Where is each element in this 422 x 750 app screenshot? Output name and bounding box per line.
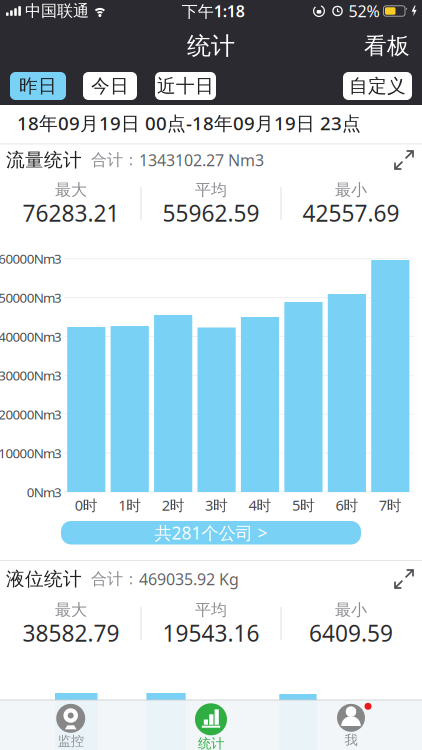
staticText: 最大 [55,600,87,620]
staticText: 共281个公司 > [154,521,267,544]
staticText: 30000Nm3 [0,366,62,384]
button[interactable]: 全屏查看 [395,149,422,171]
staticText: 50000Nm3 [0,289,62,306]
staticText: 38582.79 [22,618,119,648]
staticText: 0Nm3 [27,483,62,501]
staticText: 1时 [118,495,141,515]
staticText: 中国联通 [25,1,89,21]
staticText: 最大 [55,180,87,200]
button[interactable]: 共281个公司 > [61,521,361,544]
staticText: 2时 [162,495,185,515]
staticText: 40000Nm3 [0,328,62,345]
staticText: 统计 [187,31,235,61]
staticText: 6时 [335,495,358,515]
staticText: 4时 [248,495,271,515]
staticText: 19543.16 [162,618,259,648]
staticText: 平均 [195,600,227,620]
staticText: 10000Nm3 [0,444,62,462]
staticText: 我 [344,732,357,748]
staticText: 流量统计 [6,148,82,171]
staticText: 0时 [75,495,98,515]
staticText: 1343102.27 Nm3 [139,149,264,171]
button[interactable]: 今日 [83,72,137,100]
staticText: 下午1:18 [182,0,245,22]
staticText: 42557.69 [302,198,399,228]
button[interactable]: 看板 [364,30,422,58]
staticText: 最小 [335,600,367,620]
button[interactable]: 监控 [26,703,116,749]
staticText: 76283.21 [22,198,119,228]
staticText: 最小 [335,180,367,200]
button[interactable]: 自定义 [343,72,412,100]
staticText: 20000Nm3 [0,405,62,423]
staticText: 合计： [91,569,139,589]
button[interactable]: 近十日 [155,72,216,100]
staticText: 昨日 [19,74,57,97]
staticText: 看板 [364,32,410,60]
staticText: 统计 [198,735,224,750]
staticText: 55962.59 [162,198,259,228]
button[interactable]: 昨日 [10,72,66,100]
staticText: 469035.92 Kg [139,568,239,590]
button[interactable]: 我 [306,703,396,749]
staticText: 今日 [91,74,129,97]
staticText: 液位统计 [6,567,82,590]
staticText: 3时 [205,495,228,515]
staticText: 52% [348,0,379,22]
staticText: 近十日 [157,74,214,97]
staticText: 6409.59 [309,618,393,648]
staticText: 监控 [58,733,84,749]
staticText: 合计： [91,150,139,170]
staticText: 平均 [195,180,227,200]
staticText: 18年09月19日 00点-18年09月19日 23点 [17,111,361,135]
button[interactable]: 统计 [166,703,256,750]
staticText: 5时 [292,495,315,515]
button[interactable]: 全屏查看 [395,568,422,590]
staticText: 7时 [379,495,402,515]
staticText: 自定义 [349,74,406,97]
staticText: 60000Nm3 [0,250,62,267]
